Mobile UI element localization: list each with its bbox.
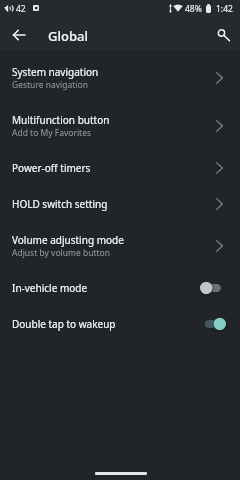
button[interactable]: Back bbox=[6, 22, 32, 48]
staticText: Gesture navigation bbox=[12, 79, 88, 91]
staticText: Global bbox=[48, 27, 88, 45]
staticText: System navigation bbox=[12, 65, 99, 79]
staticText: HOLD switch setting bbox=[12, 197, 108, 211]
button[interactable]: Power-off timers bbox=[0, 150, 240, 186]
button[interactable]: Double tap to wakeup bbox=[0, 306, 240, 342]
staticText: Double tap to wakeup bbox=[12, 317, 200, 331]
button[interactable]: System navigation bbox=[0, 54, 240, 102]
staticText: Power-off timers bbox=[12, 161, 91, 175]
staticText: In-vehicle mode bbox=[12, 281, 200, 295]
staticText: Adjust by volume button bbox=[12, 247, 110, 259]
button[interactable]: HOLD switch setting bbox=[0, 186, 240, 222]
button[interactable]: Volume adjusting mode bbox=[0, 222, 240, 270]
staticText: 1:42 bbox=[216, 3, 233, 15]
staticText: Multifunction button bbox=[12, 113, 110, 127]
button[interactable]: Multifunction button bbox=[0, 102, 240, 150]
button[interactable]: Search bbox=[210, 23, 236, 49]
staticText: Add to My Favorites bbox=[12, 127, 92, 139]
button[interactable]: In-vehicle mode bbox=[0, 270, 240, 306]
staticText: 42 bbox=[16, 3, 26, 15]
staticText: 48% bbox=[185, 3, 202, 15]
staticText: Volume adjusting mode bbox=[12, 233, 124, 247]
